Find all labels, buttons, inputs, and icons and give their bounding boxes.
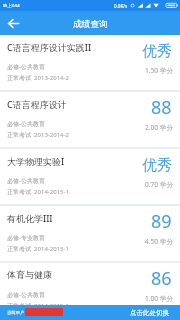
staticText: 必修-公共教育 <box>7 291 45 299</box>
staticText: 0.0K/s <box>114 3 128 9</box>
button[interactable]: 大学物理实验I <box>0 149 180 204</box>
staticText: 2.00 学分 <box>145 123 173 132</box>
staticText: 当前用户 <box>7 310 25 315</box>
staticText: 优秀 <box>142 156 172 175</box>
staticText: 正常考试 2014-2015-1 <box>7 245 69 253</box>
staticText: 正常考试 2013-2014-2 <box>7 74 69 82</box>
button[interactable]: C语言程序设计实践II <box>0 35 180 90</box>
staticText: 晚上8:54 <box>3 3 20 9</box>
staticText: 正常考试 2014-2015-1 <box>7 188 69 196</box>
button[interactable]: Back <box>0 11 27 35</box>
staticText: 优秀 <box>142 42 172 61</box>
staticText: 体育与健康 <box>7 269 52 280</box>
staticText: C语言程序设计实践II <box>7 41 92 53</box>
button[interactable]: 体育与健康 <box>0 263 180 318</box>
staticText: 正常考试 2013-2014-2 <box>7 131 69 139</box>
staticText: 89 <box>151 209 172 234</box>
staticText: 大学物理实验I <box>7 155 65 167</box>
button[interactable]: 有机化学III <box>0 206 180 261</box>
staticText: 必修-公共教育 <box>7 63 45 71</box>
staticText: 86 <box>151 266 172 291</box>
staticText: 0.70 学分 <box>145 180 173 189</box>
staticText: 88 <box>151 95 172 120</box>
staticText: 1.50 学分 <box>145 66 173 75</box>
staticText: 正常考试 2014-2015-1 <box>7 302 69 310</box>
staticText: C语言程序设计 <box>7 98 67 110</box>
staticText: 4.50 学分 <box>145 237 173 246</box>
staticText: 必修-公共教育 <box>7 177 45 185</box>
staticText: 成绩查询 <box>73 19 108 30</box>
button[interactable]: 当前用户 <box>0 305 180 320</box>
staticText: 点击此处切换 <box>130 309 169 317</box>
staticText: 有机化学III <box>7 212 53 224</box>
staticText: 1.00 学分 <box>145 294 173 303</box>
button[interactable]: C语言程序设计 <box>0 92 180 147</box>
staticText: 必修-公共教育 <box>7 120 45 128</box>
staticText: 必修-专业教育 <box>7 234 45 242</box>
